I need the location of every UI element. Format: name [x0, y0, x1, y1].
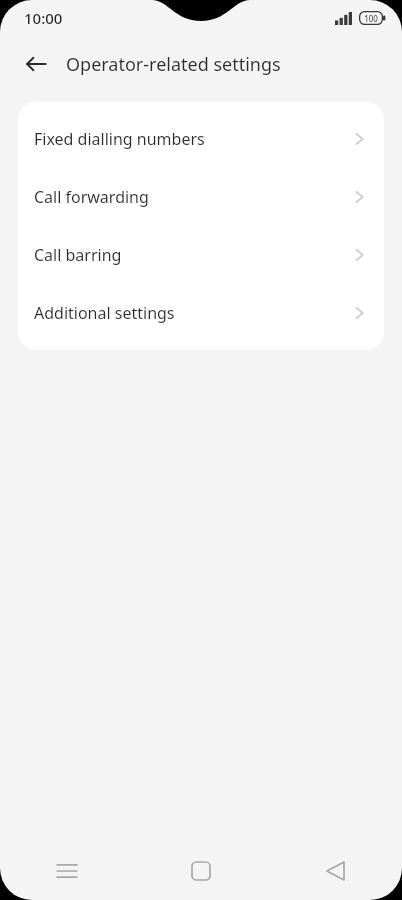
staticText: Operator-related settings [66, 52, 281, 77]
button[interactable]: Additional settings [18, 284, 384, 342]
button[interactable]: Home [134, 842, 268, 900]
staticText: Call barring [34, 244, 350, 266]
button[interactable]: Recent apps [0, 842, 134, 900]
button[interactable]: Back [14, 42, 58, 86]
staticText: Additional settings [34, 302, 350, 324]
staticText: 100 [364, 13, 378, 24]
button[interactable]: Back [268, 842, 402, 900]
staticText: Fixed dialling numbers [34, 128, 350, 150]
button[interactable]: Call forwarding [18, 168, 384, 226]
staticText: 10:00 [24, 8, 63, 28]
button[interactable]: Fixed dialling numbers [18, 110, 384, 168]
staticText: Call forwarding [34, 186, 350, 208]
button[interactable]: Call barring [18, 226, 384, 284]
